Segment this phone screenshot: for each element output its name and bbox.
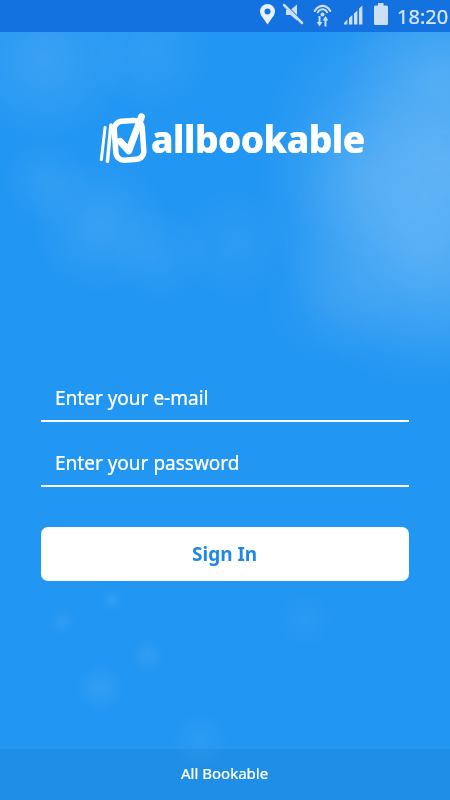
button[interactable]: Enter your password (41, 450, 409, 476)
button[interactable]: Enter your e-mail (41, 385, 409, 411)
staticText: All Bookable (181, 763, 269, 783)
button[interactable]: Sign In (41, 527, 409, 581)
staticText: Sign In (192, 541, 258, 567)
staticText: Enter your password (55, 450, 240, 476)
staticText: allbookable (151, 113, 365, 163)
staticText: 18:20 (397, 3, 449, 30)
staticText: Enter your e-mail (55, 385, 209, 411)
